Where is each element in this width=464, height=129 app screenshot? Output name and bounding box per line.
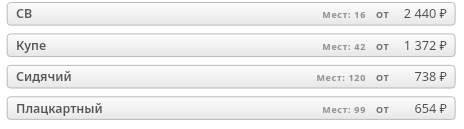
- staticText: 2 440 ₽: [403, 4, 447, 21]
- staticText: Мест: 120: [316, 71, 366, 83]
- staticText: ОТ: [376, 71, 390, 83]
- button[interactable]: Сидячий: [6, 64, 454, 87]
- staticText: 738 ₽: [414, 67, 447, 84]
- staticText: Мест: 16: [322, 8, 366, 20]
- staticText: Плацкартный: [16, 100, 103, 117]
- staticText: ОТ: [376, 103, 390, 115]
- staticText: Купе: [16, 37, 47, 54]
- button[interactable]: СВ: [6, 2, 454, 25]
- button[interactable]: Плацкартный: [6, 96, 454, 119]
- staticText: 1 372 ₽: [403, 36, 447, 53]
- staticText: ОТ: [376, 8, 390, 20]
- staticText: Мест: 42: [322, 40, 366, 52]
- staticText: Сидячий: [16, 68, 72, 85]
- staticText: Мест: 99: [322, 103, 366, 115]
- button[interactable]: Купе: [6, 33, 454, 56]
- staticText: СВ: [16, 5, 33, 22]
- staticText: ОТ: [376, 40, 390, 52]
- staticText: 654 ₽: [414, 99, 447, 116]
